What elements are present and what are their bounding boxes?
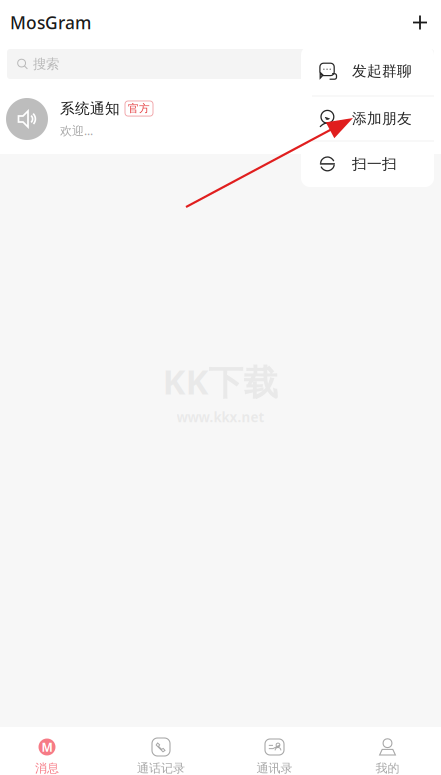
staticText: 扫一扫: [352, 155, 397, 173]
staticText: 我的: [375, 761, 399, 775]
button[interactable]: 发起群聊: [301, 46, 434, 95]
button[interactable]: 扫一扫: [301, 141, 434, 186]
staticText: 发起群聊: [352, 62, 412, 80]
button[interactable]: 系统通知: [0, 84, 441, 154]
staticText: KK下载: [162, 358, 278, 404]
staticText: 搜索: [33, 56, 59, 72]
staticText: www.kkx.net: [176, 408, 264, 426]
staticText: 添加朋友: [352, 109, 412, 127]
staticText: M: [41, 739, 52, 755]
staticText: 官方: [128, 102, 150, 115]
button[interactable]: M: [0, 727, 94, 775]
staticText: 通讯录: [256, 761, 292, 775]
staticText: MosGram: [10, 11, 91, 34]
button[interactable]: 添加朋友: [301, 96, 434, 140]
button[interactable]: 通讯录: [227, 727, 321, 775]
staticText: 系统通知: [60, 99, 120, 117]
staticText: 消息: [35, 761, 59, 775]
staticText: 通话记录: [137, 761, 185, 775]
button[interactable]: 我的: [340, 727, 434, 775]
button[interactable]: Add: [406, 6, 434, 38]
button[interactable]: 通话记录: [114, 727, 208, 775]
staticText: 欢迎...: [60, 122, 93, 138]
